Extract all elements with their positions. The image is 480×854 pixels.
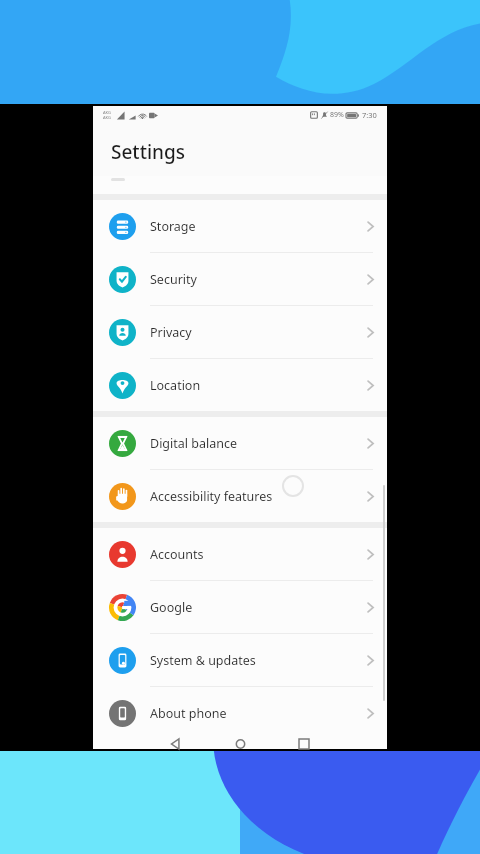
button[interactable]: About phone <box>93 687 387 739</box>
staticText: Accounts <box>150 546 204 563</box>
button[interactable]: Accounts <box>93 528 387 580</box>
button[interactable]: Recent apps <box>291 739 317 749</box>
staticText: 7:30 <box>362 110 377 120</box>
button[interactable]: Accessibility features <box>93 470 387 522</box>
button[interactable]: Back <box>163 739 189 749</box>
staticText: Settings <box>111 139 185 165</box>
staticText: Privacy <box>150 324 192 341</box>
staticText: Accessibility features <box>150 488 273 505</box>
staticText: AKG <box>103 115 111 120</box>
button[interactable]: Home <box>227 739 253 749</box>
button[interactable]: Privacy <box>93 306 387 358</box>
staticText: AKG <box>103 110 111 115</box>
staticText: Storage <box>150 218 196 235</box>
staticText: Location <box>150 377 201 394</box>
button[interactable]: Digital balance <box>93 417 387 469</box>
staticText: Digital balance <box>150 435 237 452</box>
staticText: 89% <box>330 110 344 120</box>
button[interactable]: System & updates <box>93 634 387 686</box>
button[interactable]: Security <box>93 253 387 305</box>
button[interactable]: Google <box>93 581 387 633</box>
staticText: Security <box>150 271 197 288</box>
button[interactable]: Storage <box>93 200 387 252</box>
staticText: Google <box>150 599 193 616</box>
staticText: System & updates <box>150 652 256 669</box>
staticText: About phone <box>150 705 227 722</box>
button[interactable]: Location <box>93 359 387 411</box>
